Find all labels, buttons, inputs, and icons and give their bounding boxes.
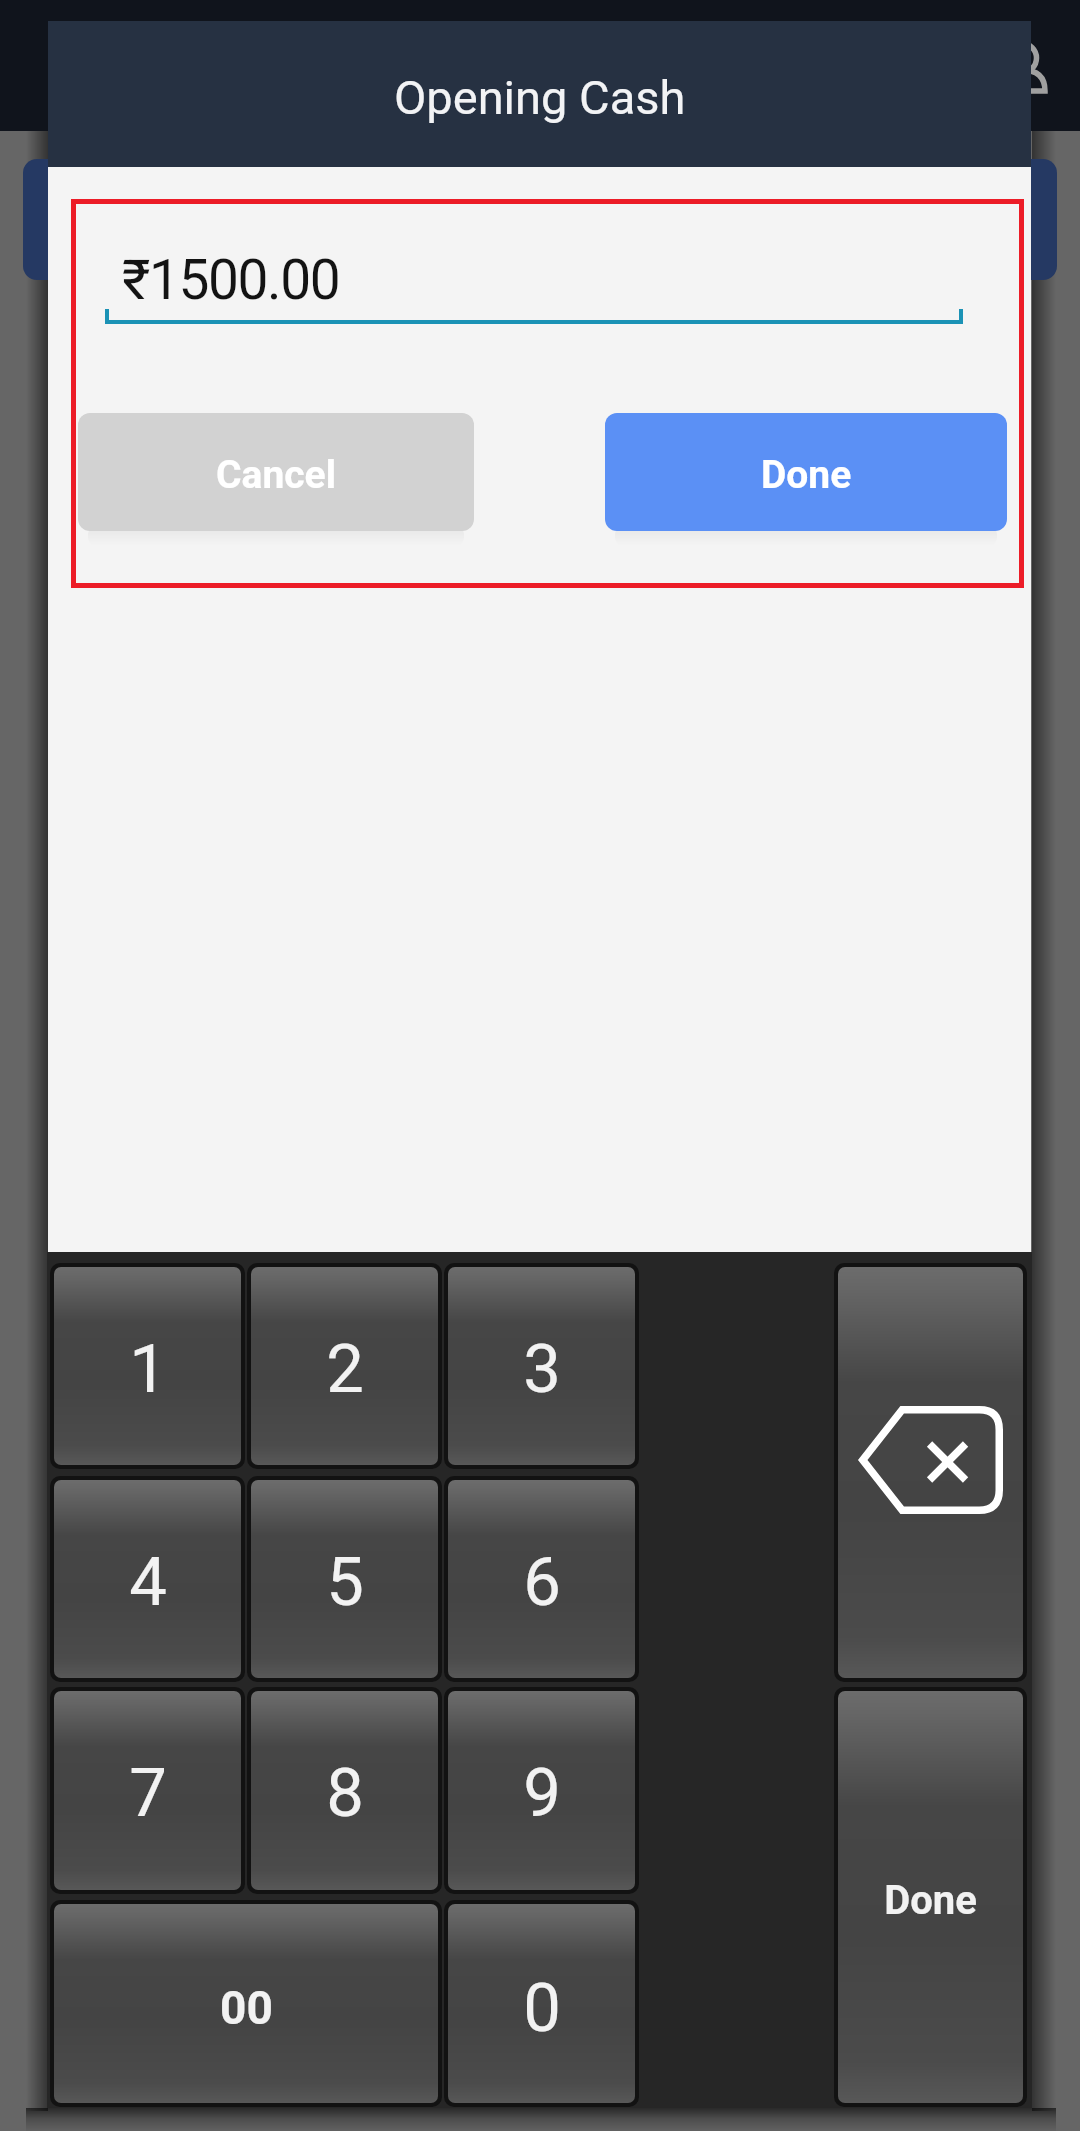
button[interactable]: Backspace [838,1267,1023,1678]
staticText: 7 [129,1754,167,1833]
staticText: 0 [523,1969,561,2048]
button[interactable]: 8 [251,1691,438,1890]
staticText: Done [761,452,852,498]
button[interactable]: Cancel [78,413,474,531]
staticText: Opening Cash [394,70,686,125]
button[interactable]: 2 [251,1267,438,1465]
button[interactable]: 00 [54,1904,438,2103]
staticText: 2 [326,1330,364,1409]
staticText: 5 [326,1543,364,1622]
button[interactable]: Done [605,413,1007,531]
staticText: Cancel [216,452,336,498]
staticText: 00 [220,1981,273,2035]
button[interactable]: 3 [448,1267,635,1465]
button[interactable]: 0 [448,1904,635,2103]
staticText: 1 [129,1330,167,1409]
button[interactable]: 4 [54,1480,241,1678]
button[interactable]: 6 [448,1480,635,1678]
button[interactable] [23,159,1057,280]
staticText: 6 [523,1543,561,1622]
staticText: Done [884,1877,977,1924]
staticText: 8 [326,1754,364,1833]
button[interactable]: 5 [251,1480,438,1678]
button[interactable]: Account [986,22,1058,94]
button[interactable]: 7 [54,1691,241,1890]
button[interactable]: 1 [54,1267,241,1465]
button[interactable]: 9 [448,1691,635,1890]
staticText: 3 [523,1330,561,1409]
staticText: 4 [129,1543,167,1622]
staticText: 9 [523,1754,561,1833]
staticText: ₹1500.00 [122,248,340,312]
button[interactable]: Done [838,1691,1023,2103]
